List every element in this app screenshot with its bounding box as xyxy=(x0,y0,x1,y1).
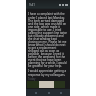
staticText: I have a complaint with the order I plac… xyxy=(28,12,67,67)
button[interactable]: Home xyxy=(45,89,52,96)
button[interactable]: Recents xyxy=(57,89,64,96)
staticText: I would appreciate getting a response by… xyxy=(28,69,67,76)
staticText: 9:41 xyxy=(29,3,35,7)
button[interactable]: Back xyxy=(32,89,39,96)
staticText: Today xyxy=(28,77,36,81)
